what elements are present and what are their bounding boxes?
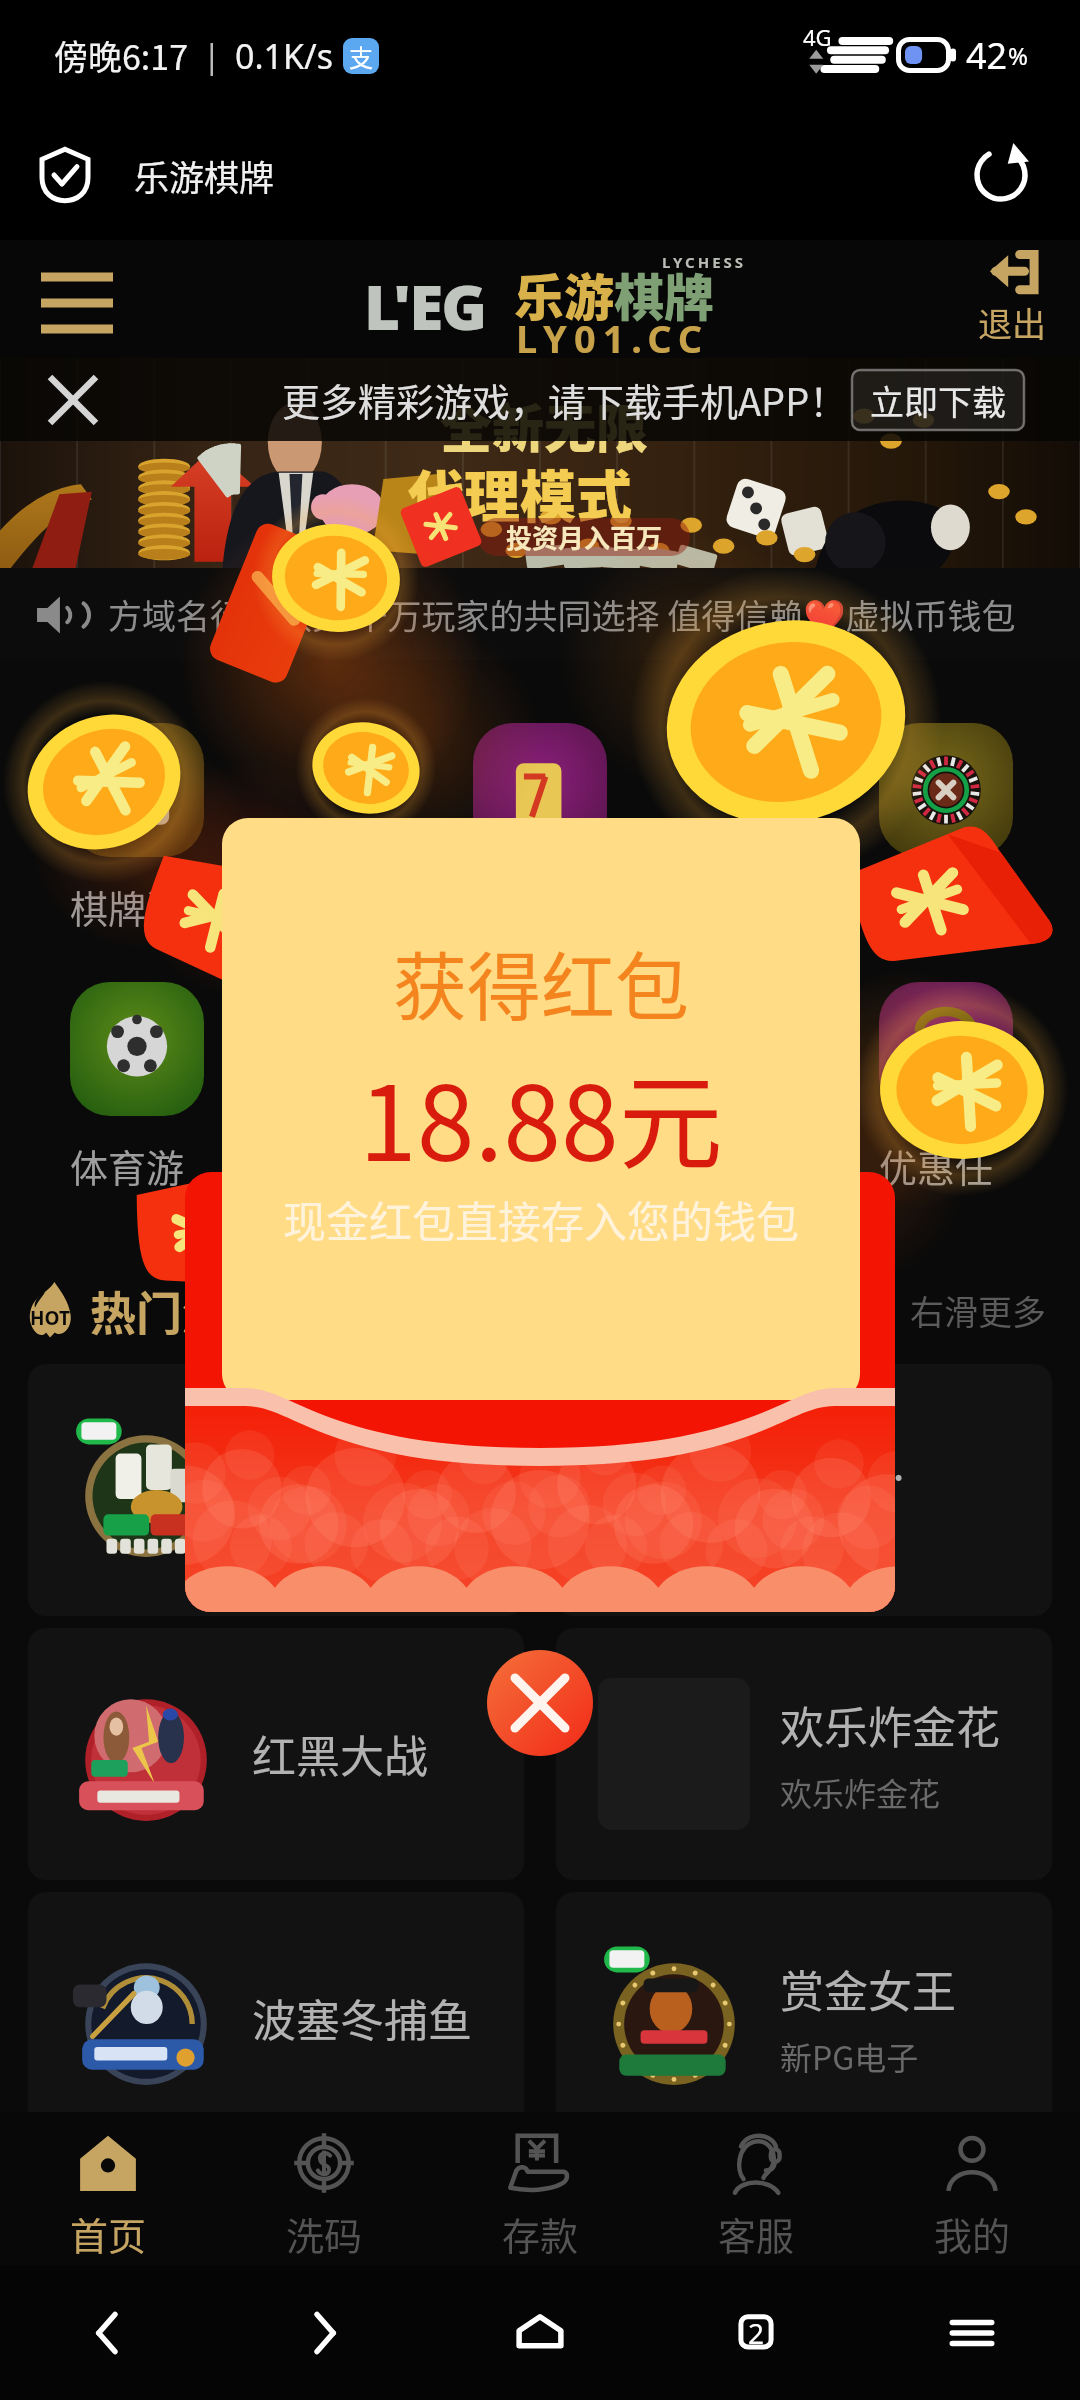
button[interactable]: 红黑大战 bbox=[28, 1628, 524, 1880]
staticText: 4G bbox=[803, 22, 832, 52]
staticText: 新PG电子 bbox=[780, 2033, 919, 2079]
staticText: 投资月入百万 bbox=[506, 518, 663, 556]
staticText: 2 bbox=[748, 2314, 765, 2352]
staticText: 支 bbox=[349, 39, 373, 74]
staticText: % bbox=[1008, 39, 1028, 72]
staticText: 体育游戏 bbox=[70, 1138, 204, 1193]
staticText: 方域名行业顶尖 千万玩家的共同选择 值得信赖❤虚拟币钱包 bbox=[108, 590, 1016, 639]
button[interactable]: 首页 bbox=[0, 2112, 216, 2265]
button[interactable]: 存款 bbox=[432, 2112, 648, 2265]
staticText: 0.1K/s bbox=[235, 33, 333, 79]
button[interactable]: 客服 bbox=[648, 2112, 864, 2265]
button[interactable]: Home bbox=[432, 2265, 648, 2400]
staticText: LYCHESS bbox=[662, 252, 747, 272]
button[interactable]: 巨星... bbox=[556, 1364, 1052, 1616]
staticText: L'EG bbox=[364, 264, 486, 348]
staticText: 更多精彩游戏，请下载手机APP！ bbox=[282, 372, 848, 427]
button[interactable]: 真人游戏 bbox=[879, 723, 1013, 934]
button[interactable]: Menu bbox=[32, 254, 122, 344]
staticText: 欢乐炸金花 bbox=[780, 1693, 1000, 1757]
staticText: 波塞冬捕鱼 bbox=[252, 1986, 472, 2050]
button[interactable]: 右滑更多 bbox=[910, 1286, 1046, 1335]
staticText: 我的 bbox=[934, 2206, 1011, 2261]
staticText: 红黑大战 bbox=[252, 1722, 428, 1786]
staticText: 18.88元 bbox=[359, 1040, 723, 1191]
staticText: LY01.CC bbox=[516, 312, 710, 364]
staticText: 客服 bbox=[718, 2206, 795, 2261]
staticText: 全新无限 bbox=[440, 388, 649, 463]
button[interactable]: 立即下载 bbox=[852, 370, 1024, 430]
staticText: 真人游戏 bbox=[879, 879, 1013, 934]
button[interactable]: Close banner bbox=[42, 369, 104, 431]
button[interactable]: Refresh bbox=[966, 140, 1036, 210]
button[interactable]: 欢乐炸金花 bbox=[556, 1628, 1052, 1880]
button[interactable]: Menu bbox=[864, 2265, 1080, 2400]
staticText: 麻将胡了 bbox=[252, 1458, 428, 1522]
staticText: 棋牌游戏 bbox=[70, 879, 204, 934]
staticText: 代理模式 bbox=[408, 452, 632, 533]
staticText: 洗码 bbox=[286, 2206, 363, 2261]
button[interactable]: 麻将胡了 bbox=[28, 1364, 524, 1616]
staticText: 百搭 bbox=[780, 1505, 845, 1551]
staticText: 棋牌 bbox=[614, 258, 714, 330]
staticText: HOT bbox=[30, 1305, 70, 1331]
button[interactable]: Forward bbox=[216, 2265, 432, 2400]
staticText: 立即下载 bbox=[870, 376, 1006, 425]
staticText: 赏金女王 bbox=[780, 1957, 956, 2021]
button[interactable]: 电子游戏 bbox=[473, 723, 607, 934]
button[interactable]: 我的 bbox=[864, 2112, 1080, 2265]
button[interactable]: 棋牌游戏 bbox=[70, 723, 204, 934]
staticText: 傍晚6:17 bbox=[54, 31, 189, 80]
staticText: 优惠任务 bbox=[879, 1138, 1013, 1193]
button[interactable]: 退出 bbox=[978, 252, 1046, 347]
button[interactable]: 波塞冬捕鱼 bbox=[28, 1892, 524, 2144]
button[interactable]: 彩票游戏 bbox=[473, 982, 607, 1193]
staticText: 乐游 bbox=[514, 258, 614, 330]
button[interactable]: 体育游戏 bbox=[70, 982, 204, 1193]
button[interactable]: Close bbox=[487, 1650, 593, 1756]
staticText: 欢乐炸金花 bbox=[780, 1769, 941, 1815]
button[interactable]: 赏金女王 bbox=[556, 1892, 1052, 2144]
staticText: 首页 bbox=[70, 2206, 147, 2261]
staticText: 巨星... bbox=[780, 1429, 905, 1493]
staticText: 乐游棋牌 bbox=[134, 150, 275, 201]
button[interactable]: Tabs bbox=[648, 2265, 864, 2400]
staticText: 热门游戏 bbox=[90, 1277, 274, 1344]
staticText: 退出 bbox=[978, 298, 1046, 347]
staticText: 现金红包直接存入您的钱包 bbox=[283, 1188, 799, 1250]
staticText: | bbox=[203, 34, 221, 78]
button[interactable]: Back bbox=[0, 2265, 216, 2400]
staticText: 存款 bbox=[502, 2206, 579, 2261]
staticText: 42 bbox=[966, 31, 1008, 80]
staticText: 彩票游戏 bbox=[473, 1138, 607, 1193]
button[interactable]: 优惠任务 bbox=[879, 982, 1013, 1193]
button[interactable]: 洗码 bbox=[216, 2112, 432, 2265]
staticText: 获得红包 bbox=[393, 928, 689, 1035]
